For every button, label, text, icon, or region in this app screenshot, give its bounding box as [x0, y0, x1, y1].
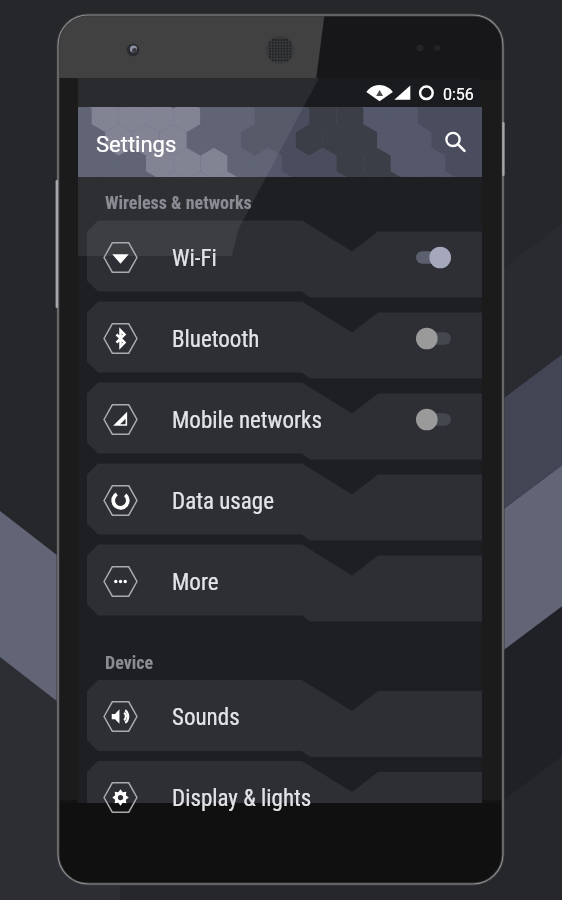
button[interactable]: Sounds — [87, 680, 482, 757]
button[interactable]: Search — [433, 120, 473, 160]
button[interactable]: Bluetooth — [87, 302, 482, 379]
staticText: Display & lights — [172, 785, 312, 812]
staticText: Bluetooth — [172, 326, 260, 353]
staticText: Wireless & networks — [105, 192, 252, 213]
staticText: Sounds — [172, 704, 240, 731]
staticText: More — [172, 569, 219, 596]
staticText: Mobile networks — [172, 407, 322, 434]
staticText: Wi-Fi — [172, 245, 217, 272]
staticText: Data usage — [172, 488, 274, 515]
staticText: Device — [105, 652, 154, 673]
button[interactable]: Mobile networks — [87, 383, 482, 460]
button[interactable]: Display & lights — [87, 761, 482, 838]
button[interactable]: Wi-Fi — [87, 221, 482, 298]
button[interactable]: Data usage — [87, 464, 482, 541]
button[interactable]: More — [87, 545, 482, 622]
staticText: Settings — [96, 132, 177, 158]
staticText: 0:56 — [443, 85, 474, 104]
